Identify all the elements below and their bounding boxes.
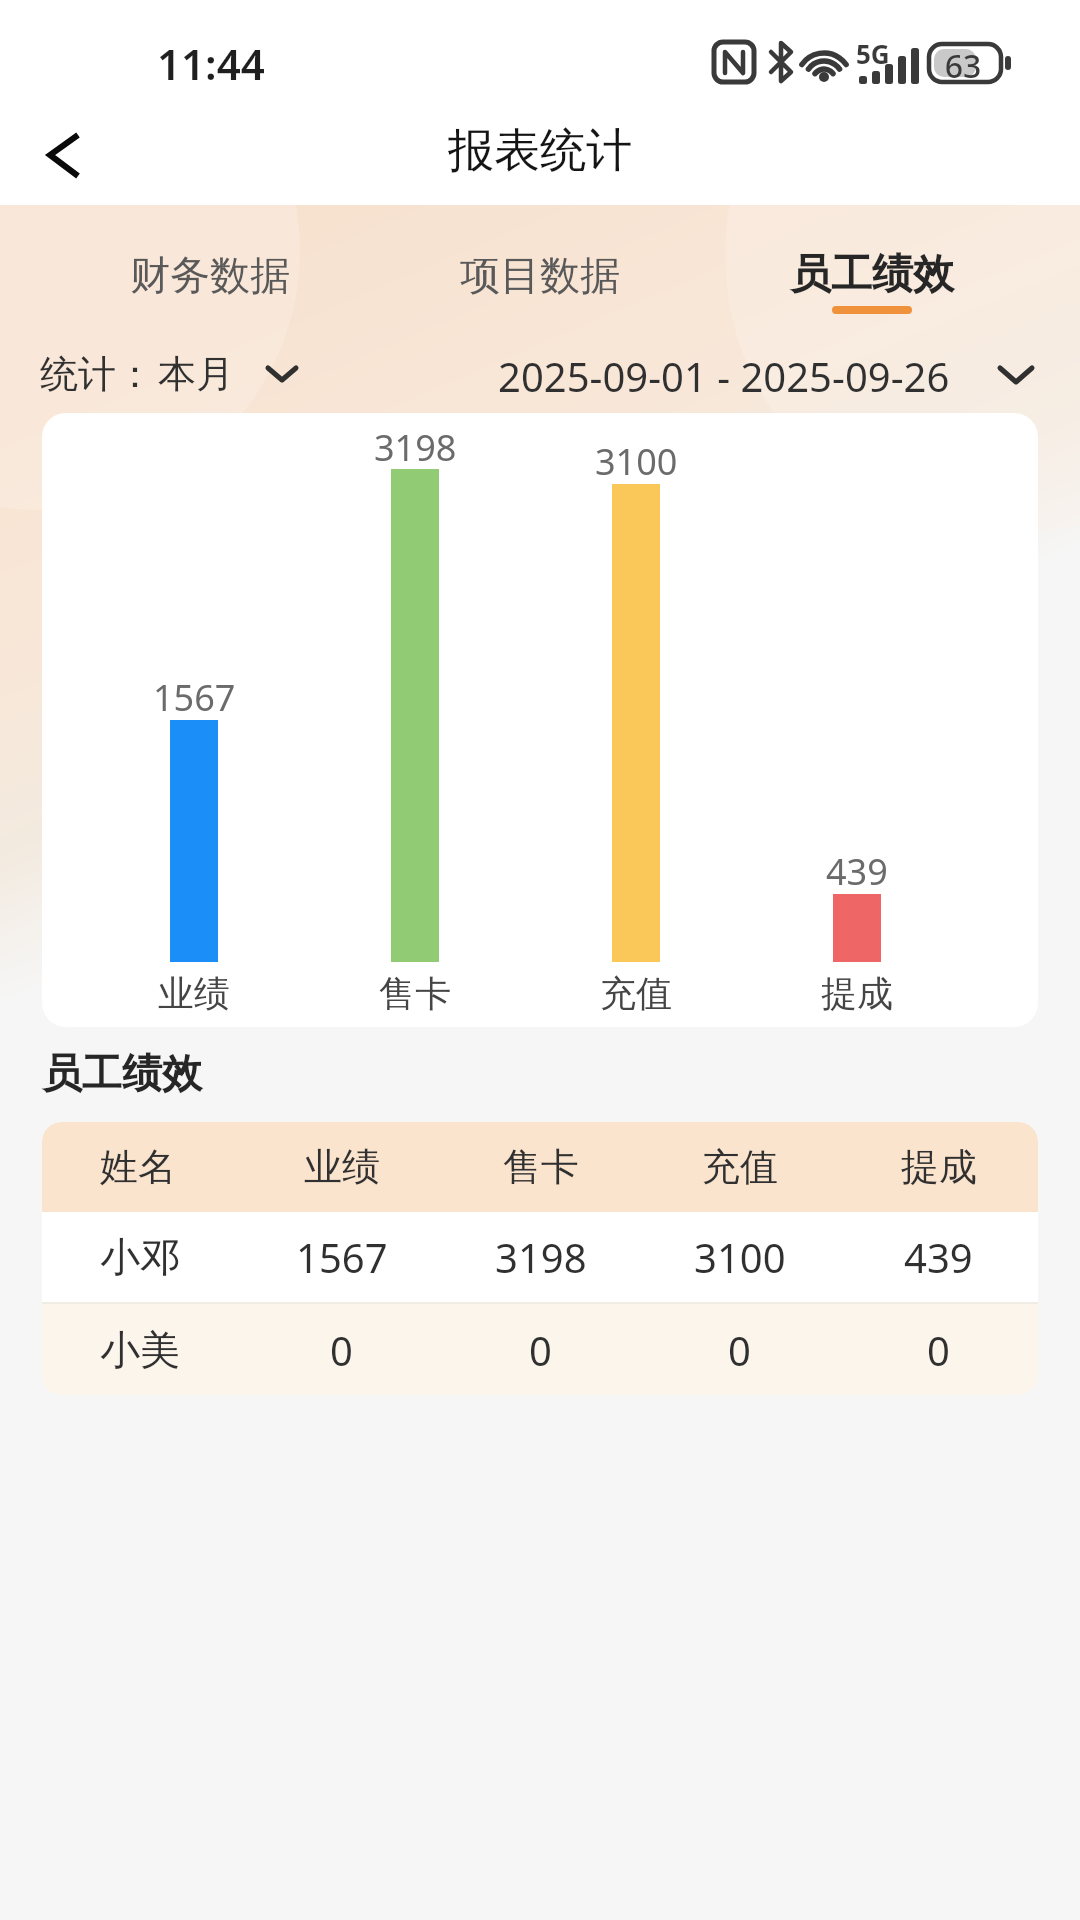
staticText: 报表统计 [448, 122, 632, 180]
staticText: 充值 [702, 1143, 778, 1191]
staticText: 本月 [158, 350, 234, 398]
button[interactable]: 财务数据 [60, 235, 360, 315]
button[interactable]: 项目数据 [390, 235, 690, 315]
button[interactable]: 小邓 [42, 1212, 1038, 1302]
staticText: 业绩 [158, 971, 230, 1016]
staticText: 员工绩效 [42, 1048, 202, 1098]
staticText: 2025-09-01 - 2025-09-26 [498, 349, 950, 403]
staticText: 小美 [100, 1325, 242, 1375]
staticText: 1567 [153, 673, 236, 722]
staticText: 业绩 [304, 1143, 380, 1191]
staticText: 3198 [495, 1230, 587, 1284]
staticText: 3100 [694, 1230, 786, 1284]
button[interactable]: 2025-09-01 - 2025-09-26 [480, 344, 1040, 400]
staticText: 0 [728, 1323, 751, 1377]
staticText: 3100 [595, 437, 678, 486]
button[interactable] [28, 126, 100, 186]
staticText: 姓名 [100, 1143, 242, 1191]
staticText: 项目数据 [460, 250, 620, 300]
staticText: 0 [529, 1323, 552, 1377]
button[interactable]: 员工绩效 [722, 235, 1022, 315]
staticText: 充值 [600, 971, 672, 1016]
staticText: 5G [856, 36, 890, 71]
staticText: 小邓 [100, 1232, 242, 1282]
staticText: 售卡 [379, 971, 451, 1016]
staticText: 提成 [901, 1143, 977, 1191]
staticText: 售卡 [503, 1143, 579, 1191]
staticText: 提成 [821, 971, 893, 1016]
staticText: 财务数据 [130, 250, 290, 300]
staticText: 1567 [296, 1230, 388, 1284]
staticText: 439 [904, 1230, 973, 1284]
staticText: 0 [927, 1323, 950, 1377]
staticText: 员工绩效 [790, 249, 954, 301]
staticText: 0 [330, 1323, 353, 1377]
button[interactable]: 小美 [42, 1304, 1038, 1395]
staticText: 439 [826, 847, 888, 896]
staticText: 11:44 [157, 35, 265, 92]
staticText: 63 [929, 44, 997, 88]
button[interactable]: 本月 [158, 344, 318, 400]
staticText: 统计： [40, 350, 154, 398]
staticText: 3198 [374, 423, 457, 472]
